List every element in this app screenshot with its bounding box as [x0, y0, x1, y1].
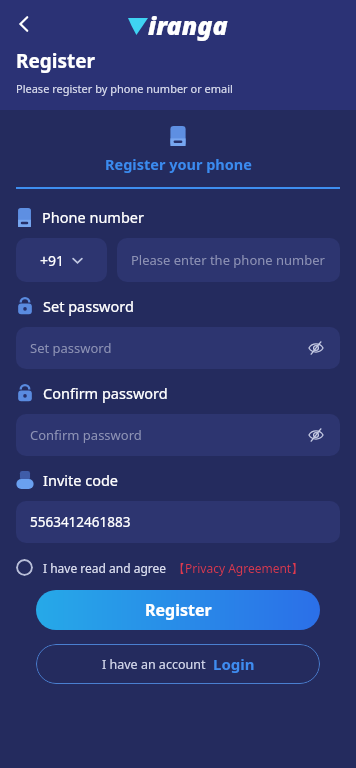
button[interactable]: Show password [306, 425, 326, 445]
staticText: Login [213, 654, 255, 674]
button[interactable]: Show password [306, 338, 326, 358]
staticText: Invite code [43, 470, 118, 490]
staticText: Confirm password [43, 383, 168, 403]
staticText: Set password [43, 296, 134, 316]
staticText: Please enter the phone number [131, 251, 325, 269]
button[interactable]: Confirm password [16, 414, 340, 456]
staticText: Register your phone [105, 154, 252, 174]
staticText: +91 [40, 251, 65, 270]
staticText: I have an account [102, 656, 206, 673]
button[interactable]: I have read and agree [16, 559, 304, 576]
staticText: Set password [30, 339, 306, 357]
staticText: Please register by phone number or email [16, 81, 233, 96]
staticText: Register [145, 599, 212, 621]
button[interactable]: +91 [16, 238, 107, 282]
button[interactable]: Set password [16, 327, 340, 369]
staticText: Confirm password [30, 426, 306, 444]
button[interactable]: Please enter the phone number [117, 238, 340, 282]
button[interactable]: Register your phone [0, 110, 356, 189]
staticText: iranga [148, 8, 228, 42]
button[interactable]: 【Privacy Agreement】 [173, 560, 304, 576]
staticText: Register [16, 48, 96, 74]
button[interactable]: Register [36, 590, 320, 630]
button[interactable]: Back [6, 6, 42, 42]
button[interactable]: I have an account [36, 644, 320, 684]
staticText: I have read and agree [43, 560, 167, 576]
staticText: Phone number [42, 207, 144, 227]
button[interactable]: 5563412461883 [16, 501, 340, 543]
staticText: 5563412461883 [30, 513, 131, 531]
